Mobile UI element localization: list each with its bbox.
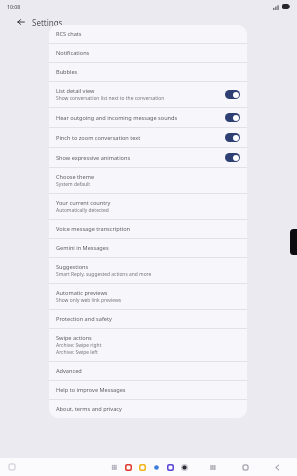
button[interactable]: About, terms and privacy: [49, 400, 247, 418]
staticText: 10:08: [7, 3, 21, 10]
staticText: Pinch to zoom conversation text: [56, 134, 141, 142]
staticText: Notifications: [56, 49, 90, 57]
button[interactable]: Hear outgoing and incoming message sound…: [49, 108, 247, 128]
button[interactable]: Protection and safety: [49, 310, 247, 329]
button[interactable]: Gemini in Messages: [49, 239, 247, 258]
button[interactable]: List detail view: [49, 82, 247, 108]
button[interactable]: RCS chats: [49, 25, 247, 44]
button[interactable]: Choose theme: [49, 168, 247, 194]
button[interactable]: Home: [239, 461, 251, 473]
staticText: Bubbles: [56, 68, 78, 76]
button[interactable]: Camera: [179, 462, 189, 472]
button[interactable]: Recent apps: [207, 461, 219, 473]
staticText: System default: [56, 181, 91, 188]
button[interactable]: Your current country: [49, 194, 247, 220]
button[interactable]: Pinch to zoom conversation text: [49, 128, 247, 148]
staticText: RCS chats: [56, 30, 82, 38]
button[interactable]: Advanced: [49, 362, 247, 381]
staticText: Gemini in Messages: [56, 244, 109, 252]
staticText: Archive: Swipe left: [56, 349, 98, 356]
button[interactable]: Back: [271, 461, 283, 473]
button[interactable]: Notifications: [49, 44, 247, 63]
button[interactable]: Chrome: [165, 462, 175, 472]
staticText: Swipe actions: [56, 334, 92, 342]
button[interactable]: Keep: [137, 462, 147, 472]
button[interactable]: Assistant: [7, 462, 17, 472]
button[interactable]: Automatic previews: [49, 284, 247, 310]
staticText: Automatic previews: [56, 289, 108, 297]
staticText: Settings: [32, 17, 63, 28]
staticText: Your current country: [56, 199, 111, 207]
staticText: Hear outgoing and incoming message sound…: [56, 114, 178, 122]
button[interactable]: Suggestions: [49, 258, 247, 284]
staticText: Advanced: [56, 367, 82, 375]
staticText: Automatically detected: [56, 207, 109, 214]
button[interactable]: Messages: [123, 462, 133, 472]
staticText: Archive: Swipe right: [56, 342, 102, 349]
staticText: List detail view: [56, 87, 95, 95]
staticText: Show conversation list next to the conve…: [56, 95, 165, 102]
staticText: Protection and safety: [56, 315, 112, 323]
button[interactable]: Drive: [151, 462, 161, 472]
button[interactable]: Show expressive animations: [49, 148, 247, 168]
button[interactable]: Bubbles: [49, 63, 247, 82]
staticText: Show expressive animations: [56, 154, 131, 162]
staticText: Suggestions: [56, 263, 89, 271]
staticText: Voice message transcription: [56, 225, 130, 233]
button[interactable]: Back: [14, 15, 28, 29]
button[interactable]: All apps: [109, 462, 119, 472]
staticText: Help to improve Messages: [56, 386, 126, 394]
staticText: Show only web link previews: [56, 297, 122, 304]
button[interactable]: Swipe actions: [49, 329, 247, 362]
button[interactable]: Help to improve Messages: [49, 381, 247, 400]
staticText: Choose theme: [56, 173, 95, 181]
staticText: Smart Reply, suggested actions and more: [56, 271, 152, 278]
button[interactable]: Voice message transcription: [49, 220, 247, 239]
staticText: About, terms and privacy: [56, 405, 122, 413]
